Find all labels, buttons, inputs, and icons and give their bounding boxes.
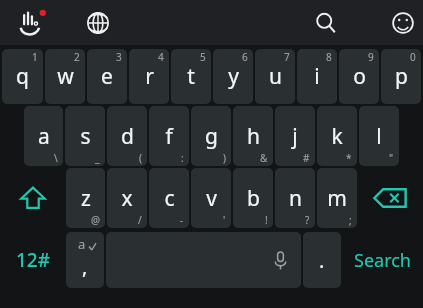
- button[interactable]: m: [317, 168, 357, 228]
- button[interactable]: Space: [106, 232, 301, 288]
- button[interactable]: Emoji: [385, 5, 421, 41]
- staticText: ,: [82, 253, 88, 280]
- staticText: 8: [326, 50, 332, 64]
- staticText: :: [181, 151, 184, 165]
- staticText: a: [78, 235, 86, 253]
- button[interactable]: Search: [343, 232, 421, 288]
- button[interactable]: z: [66, 168, 105, 228]
- staticText: e: [101, 62, 113, 91]
- staticText: ": [389, 151, 394, 165]
- staticText: \: [54, 151, 58, 165]
- staticText: _: [95, 151, 100, 165]
- button[interactable]: p: [381, 49, 421, 104]
- button[interactable]: e: [87, 49, 127, 104]
- button[interactable]: v: [191, 168, 231, 228]
- staticText: 2: [74, 50, 80, 64]
- button[interactable]: w: [45, 49, 85, 104]
- staticText: q: [16, 62, 29, 91]
- button[interactable]: u: [255, 49, 295, 104]
- staticText: w: [57, 62, 74, 91]
- staticText: &: [260, 151, 268, 165]
- staticText: u: [269, 62, 282, 91]
- button[interactable]: o: [339, 49, 379, 104]
- staticText: 7: [284, 50, 290, 64]
- staticText: t: [187, 62, 195, 91]
- staticText: m: [327, 184, 347, 213]
- staticText: i: [314, 62, 320, 91]
- button[interactable]: c: [149, 168, 189, 228]
- staticText: h: [247, 122, 260, 151]
- button[interactable]: Keyboard menu: [12, 3, 52, 43]
- staticText: (: [139, 151, 142, 165]
- staticText: o: [353, 62, 366, 91]
- button[interactable]: Search: [308, 5, 344, 41]
- staticText: *: [346, 151, 352, 165]
- staticText: y: [228, 62, 239, 91]
- staticText: @: [91, 213, 100, 227]
- staticText: 9: [368, 50, 374, 64]
- button[interactable]: x: [107, 168, 147, 228]
- staticText: 1: [32, 50, 38, 64]
- staticText: p: [395, 62, 408, 91]
- button[interactable]: j: [275, 106, 315, 166]
- staticText: b: [247, 184, 260, 213]
- staticText: k: [331, 122, 343, 151]
- button[interactable]: i: [297, 49, 337, 104]
- staticText: g: [205, 122, 218, 151]
- staticText: v: [206, 184, 217, 213]
- button[interactable]: q: [2, 49, 43, 104]
- button[interactable]: .: [303, 232, 341, 288]
- staticText: a: [38, 122, 50, 151]
- staticText: 6: [242, 50, 248, 64]
- staticText: 12#: [16, 247, 51, 273]
- staticText: ': [223, 213, 226, 227]
- button[interactable]: n: [275, 168, 315, 228]
- button[interactable]: Shift: [2, 168, 64, 228]
- button[interactable]: ,: [66, 232, 104, 288]
- staticText: 5: [200, 50, 206, 64]
- staticText: -: [180, 213, 184, 227]
- button[interactable]: s: [65, 106, 105, 166]
- staticText: ?: [305, 213, 310, 227]
- staticText: Search: [354, 248, 411, 273]
- button[interactable]: t: [171, 49, 211, 104]
- button[interactable]: h: [233, 106, 273, 166]
- staticText: s: [80, 122, 91, 151]
- staticText: n: [289, 184, 302, 213]
- button[interactable]: g: [191, 106, 231, 166]
- staticText: 0: [410, 50, 416, 64]
- staticText: 3: [116, 50, 122, 64]
- button[interactable]: 12#: [2, 232, 64, 288]
- staticText: .: [319, 247, 325, 274]
- staticText: d: [121, 122, 134, 151]
- staticText: 4: [158, 50, 164, 64]
- button[interactable]: r: [129, 49, 169, 104]
- button[interactable]: k: [317, 106, 357, 166]
- staticText: x: [121, 184, 133, 213]
- button[interactable]: y: [213, 49, 253, 104]
- button[interactable]: a: [24, 106, 63, 166]
- staticText: c: [164, 184, 175, 213]
- staticText: f: [165, 122, 173, 151]
- button[interactable]: d: [107, 106, 147, 166]
- staticText: !: [265, 213, 268, 227]
- button[interactable]: b: [233, 168, 273, 228]
- staticText: #: [303, 151, 310, 165]
- button[interactable]: Backspace: [359, 168, 421, 228]
- staticText: /: [138, 213, 142, 227]
- staticText: j: [292, 122, 298, 151]
- staticText: r: [145, 62, 154, 91]
- staticText: ;: [349, 213, 352, 227]
- staticText: ): [223, 151, 226, 165]
- button[interactable]: Switch language: [80, 5, 116, 41]
- staticText: l: [376, 122, 382, 151]
- button[interactable]: f: [149, 106, 189, 166]
- staticText: z: [81, 184, 91, 213]
- button[interactable]: l: [359, 106, 399, 166]
